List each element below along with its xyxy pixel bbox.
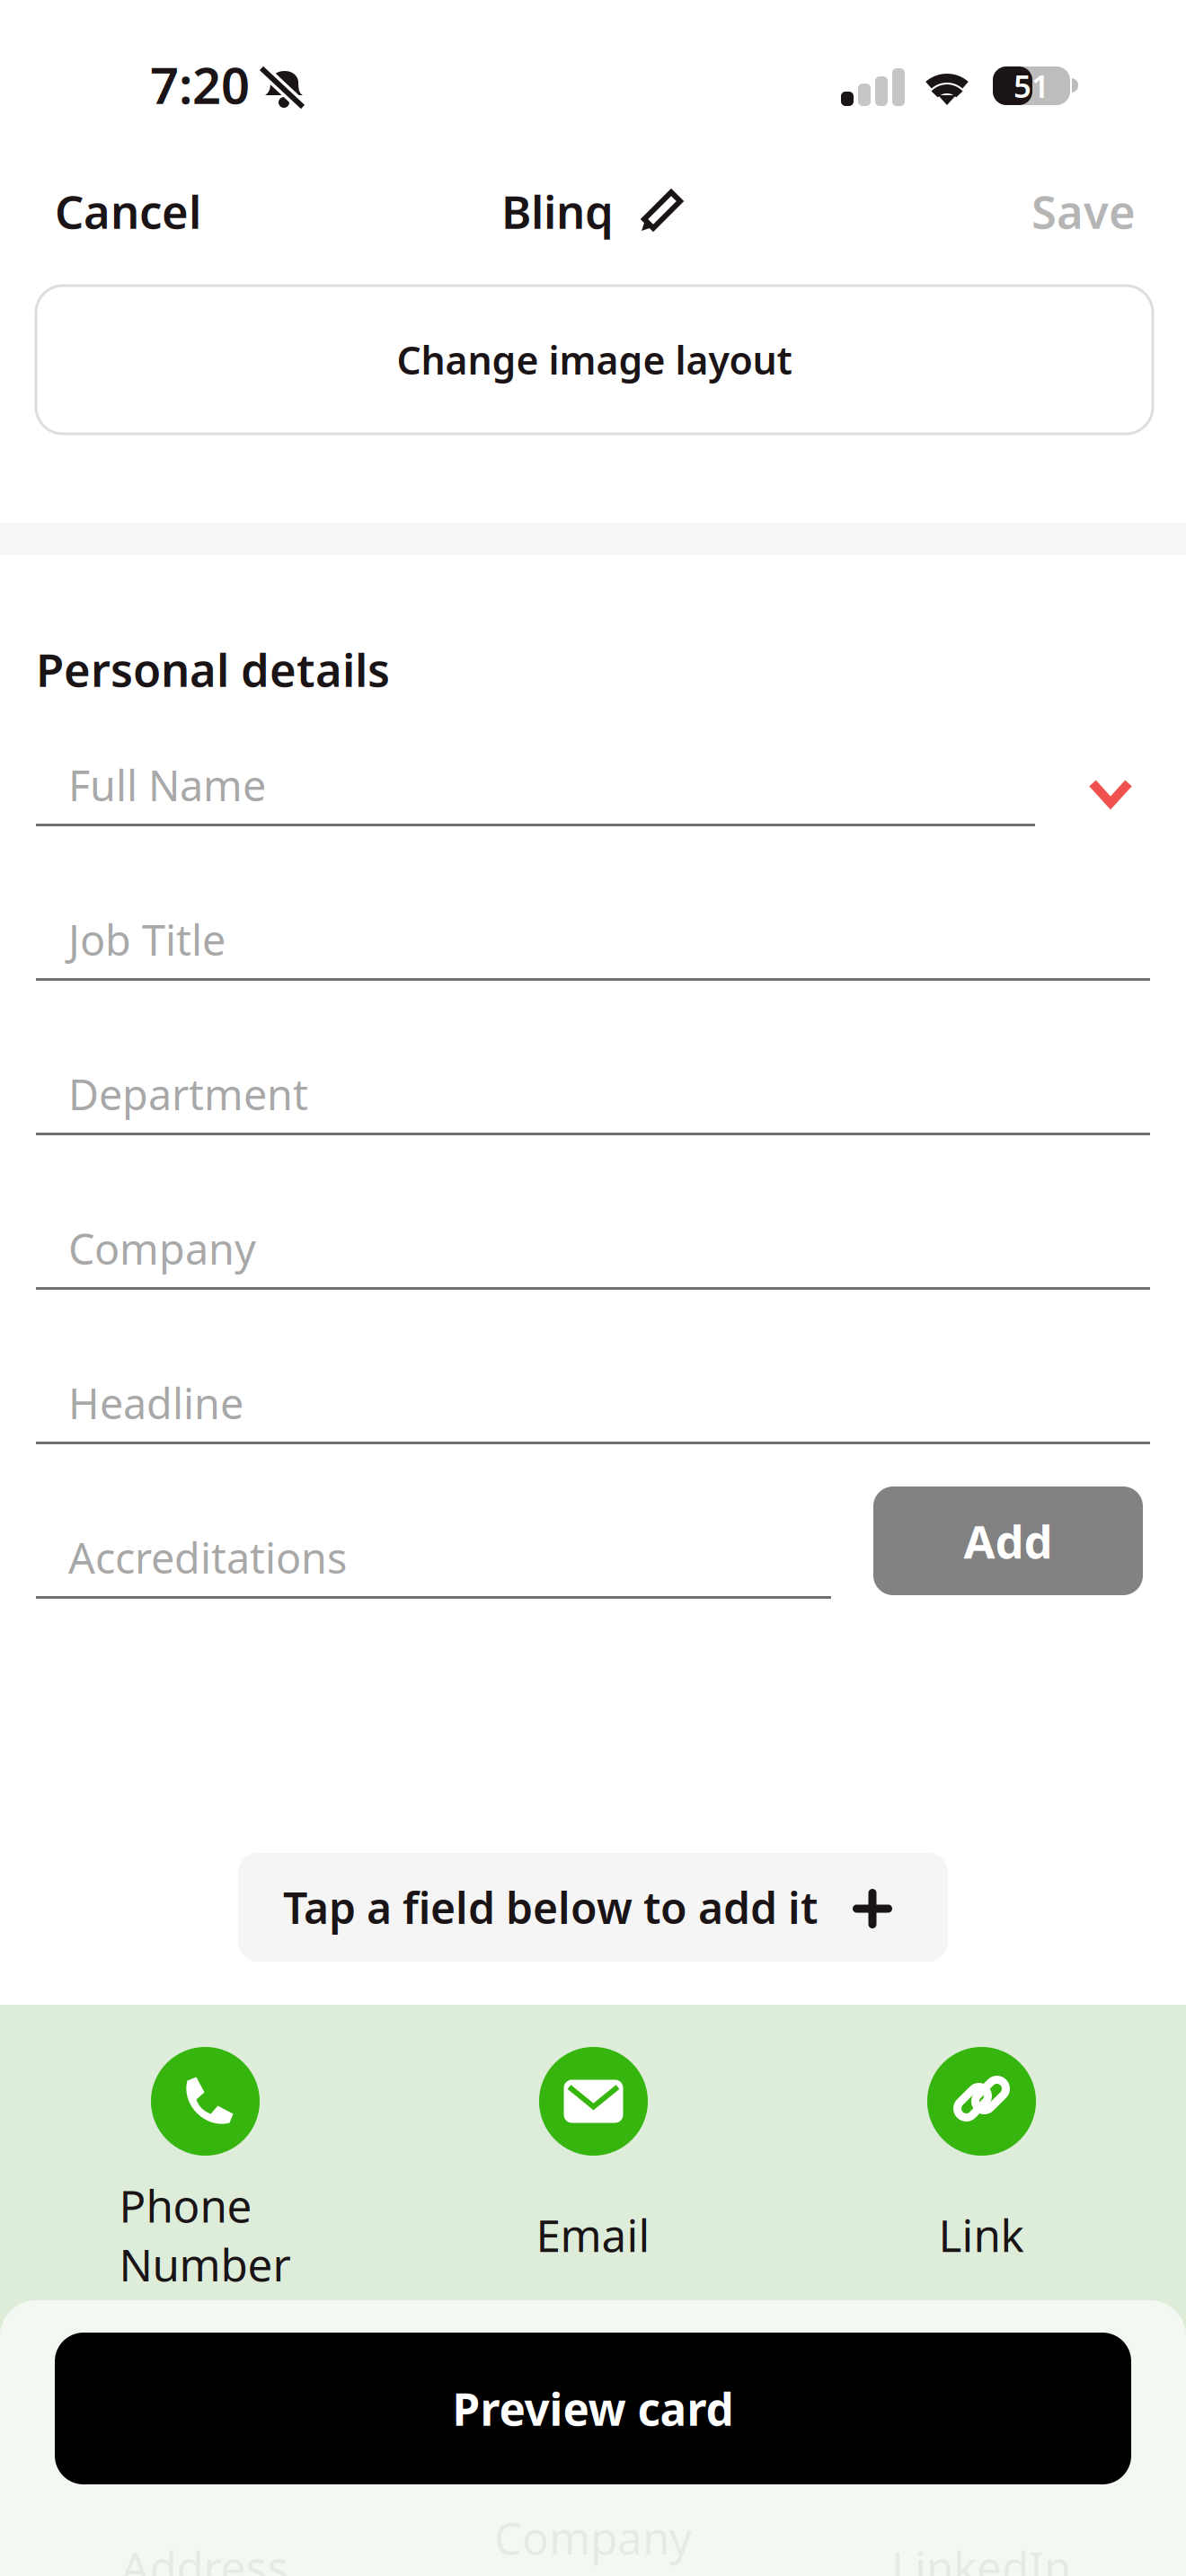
staticText: Email <box>536 2205 650 2264</box>
button[interactable]: Company <box>0 1178 1186 1290</box>
staticText: Company <box>68 1221 256 1276</box>
button[interactable]: Phone Number <box>7 2005 403 2299</box>
button[interactable]: Company <box>395 2307 791 2576</box>
button[interactable]: Tap a field below to add it <box>238 1853 948 1962</box>
button[interactable]: Department <box>0 1023 1186 1135</box>
staticText: Department <box>68 1066 308 1122</box>
staticText: Accreditations <box>68 1530 347 1585</box>
staticText: Phone Number <box>119 2176 291 2294</box>
staticText: Personal details <box>36 639 390 699</box>
staticText: Tap a field below to add it <box>283 1879 818 1936</box>
staticText: Save <box>1031 181 1136 241</box>
button[interactable]: Link <box>783 2005 1179 2299</box>
staticText: Cancel <box>55 181 201 241</box>
staticText: Company <box>494 2508 692 2567</box>
staticText: Preview card <box>452 2379 734 2438</box>
button[interactable]: Preview card <box>55 2333 1131 2484</box>
staticText: 7:20 <box>150 51 250 118</box>
button[interactable]: Full Name <box>0 714 1186 826</box>
staticText: 51 <box>1013 65 1049 106</box>
button[interactable]: Accreditations <box>0 1486 1186 1599</box>
staticText: Blinq <box>501 181 614 241</box>
staticText: Add <box>964 1511 1053 1571</box>
button[interactable]: Choose a saved name <box>1067 754 1154 826</box>
staticText: LinkedIn <box>891 2479 1071 2576</box>
button[interactable]: Save <box>992 166 1136 256</box>
button[interactable]: Job Title <box>0 869 1186 981</box>
button[interactable]: Change image layout <box>36 286 1153 434</box>
button[interactable]: Email <box>395 2005 791 2299</box>
staticText: Full Name <box>68 757 266 813</box>
button[interactable]: Add <box>873 1486 1143 1595</box>
button[interactable]: Cancel <box>55 166 235 256</box>
button[interactable]: Blinq <box>501 166 717 256</box>
button[interactable]: Headline <box>0 1332 1186 1444</box>
staticText: Link <box>938 2205 1024 2264</box>
button[interactable]: Address <box>7 2307 403 2576</box>
staticText: Headline <box>68 1375 243 1431</box>
staticText: Address <box>121 2479 289 2576</box>
button[interactable]: LinkedIn <box>783 2307 1179 2576</box>
staticText: Job Title <box>68 912 226 967</box>
staticText: Change image layout <box>397 334 792 385</box>
